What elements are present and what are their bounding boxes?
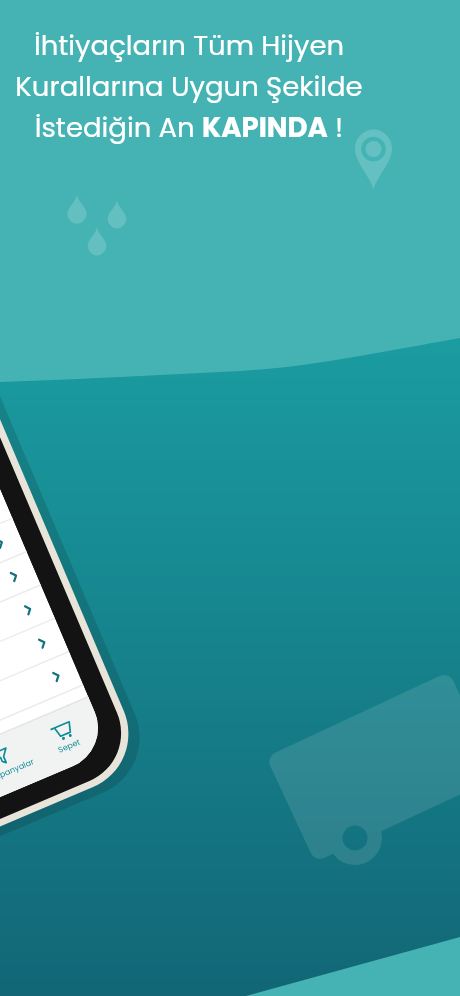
staticText: İhtiyaçların Tüm Hijyen Kurallarına Uygu…: [0, 26, 378, 147]
